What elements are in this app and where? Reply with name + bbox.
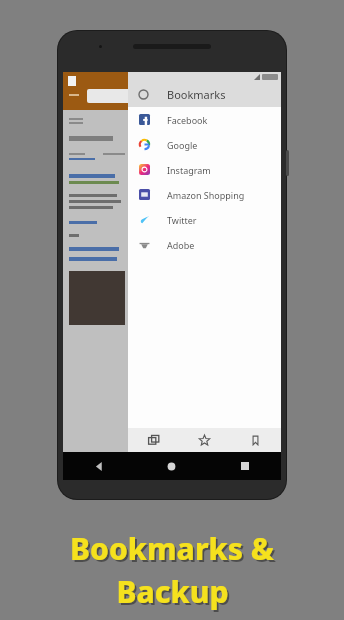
staticText: Instagram	[167, 164, 211, 176]
button[interactable]: Favourites	[179, 428, 230, 452]
staticText: Backup	[118, 573, 231, 614]
button[interactable]: Bookmark	[230, 428, 281, 452]
button[interactable]: Bookmarks	[128, 81, 281, 107]
staticText: Bookmarks &	[72, 530, 276, 571]
staticText: Google	[167, 139, 198, 151]
button[interactable]: Back	[63, 452, 135, 480]
staticText: Amazon Shopping	[167, 189, 245, 201]
button[interactable]: Tabs	[128, 428, 179, 452]
button[interactable]: Facebook	[128, 107, 281, 132]
button[interactable]: Google	[128, 132, 281, 157]
button[interactable]: Adobe	[128, 232, 281, 257]
staticText: Adobe	[167, 239, 195, 251]
staticText: Backup	[116, 571, 229, 612]
button[interactable]: Home	[135, 452, 208, 480]
staticText: Bookmarks	[167, 87, 226, 102]
button[interactable]: Twitter	[128, 207, 281, 232]
button[interactable]: Amazon Shopping	[128, 182, 281, 207]
staticText: Twitter	[167, 214, 197, 226]
button[interactable]: Instagram	[128, 157, 281, 182]
staticText: Bookmarks &	[70, 528, 274, 569]
button[interactable]: Recent apps	[208, 452, 281, 480]
staticText: Facebook	[167, 114, 208, 126]
